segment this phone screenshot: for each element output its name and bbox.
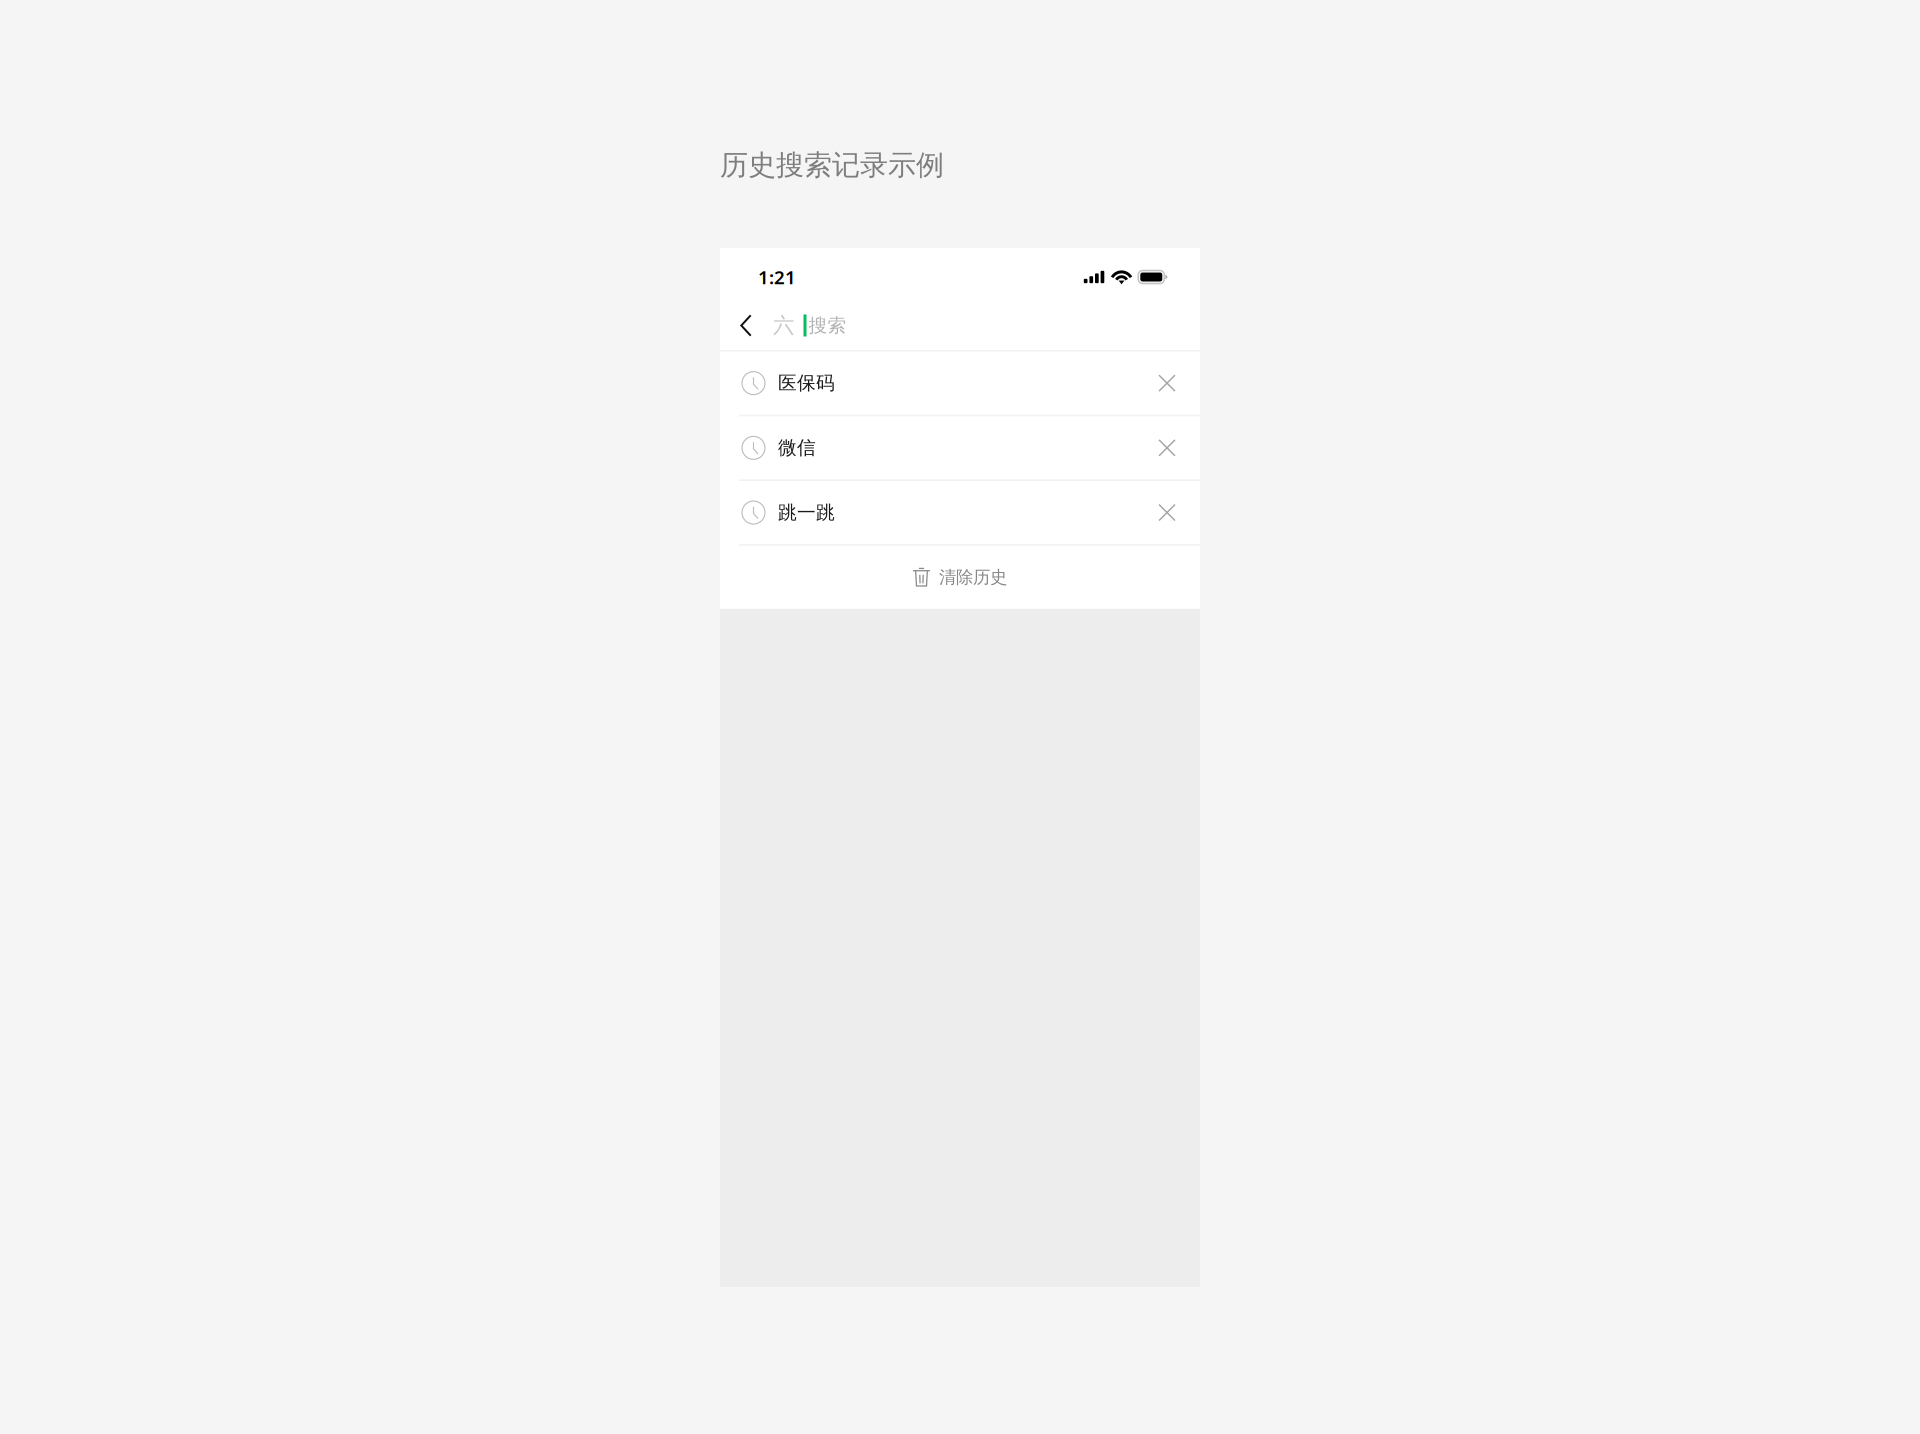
staticText: 六 [773, 312, 794, 339]
staticText: 历史搜索记录示例 [720, 148, 944, 182]
button[interactable]: Remove 微信 [1143, 416, 1191, 479]
button[interactable]: Back [720, 303, 769, 347]
staticText: 医保码 [778, 372, 835, 395]
button[interactable]: Remove 跳一跳 [1143, 481, 1191, 544]
button[interactable]: Remove 医保码 [1143, 352, 1191, 415]
staticText: 清除历史 [939, 567, 1007, 588]
button[interactable]: 医保码 [720, 352, 1200, 415]
staticText: 微信 [778, 436, 816, 459]
staticText: 跳一跳 [778, 501, 835, 524]
staticText: 1:21 [758, 265, 796, 289]
button[interactable]: 微信 [720, 416, 1200, 479]
button[interactable]: 清除历史 [720, 546, 1200, 609]
staticText: 搜索 [808, 314, 846, 337]
button[interactable]: 跳一跳 [720, 481, 1200, 544]
